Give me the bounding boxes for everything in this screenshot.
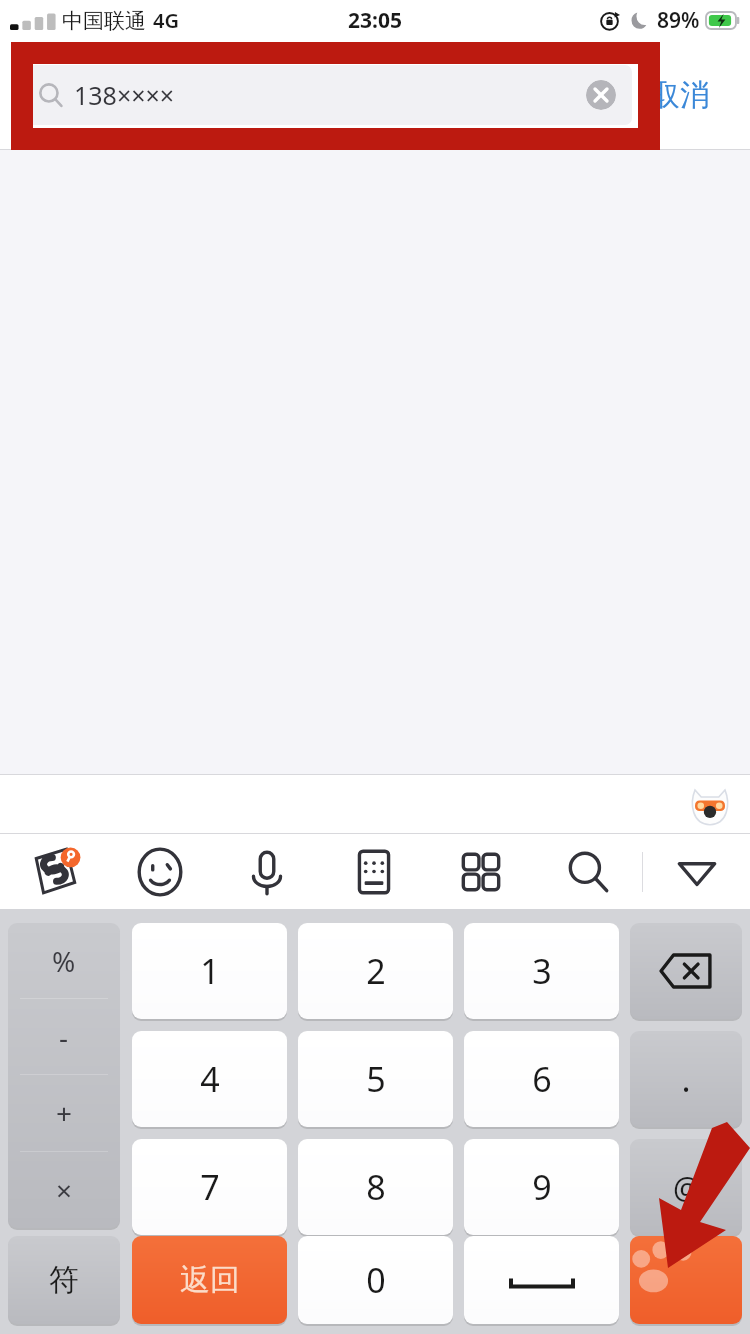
button[interactable]: Hide keyboard — [671, 846, 723, 898]
button[interactable]: Confirm — [630, 1236, 742, 1324]
staticText: 中国联通 — [62, 8, 146, 34]
button[interactable]: Search — [562, 846, 614, 898]
button[interactable]: 0 — [298, 1236, 453, 1324]
staticText: 3 — [532, 948, 552, 994]
button[interactable]: Space — [464, 1236, 619, 1324]
button[interactable]: 取消 — [632, 40, 728, 150]
staticText: . — [681, 1056, 691, 1102]
button[interactable]: Voice input — [241, 846, 293, 898]
staticText: 符 — [49, 1261, 79, 1299]
staticText: 9 — [532, 1164, 552, 1210]
button[interactable]: 6 — [464, 1031, 619, 1127]
button[interactable] — [630, 923, 742, 1019]
staticText: × — [56, 1171, 73, 1209]
button[interactable]: + — [8, 1075, 120, 1151]
button[interactable]: Emoji — [134, 846, 186, 898]
button[interactable]: Clear text — [586, 80, 616, 110]
button[interactable]: 5 — [298, 1031, 453, 1127]
button[interactable]: 8 — [298, 1139, 453, 1235]
staticText: @ — [673, 1167, 700, 1208]
staticText: + — [56, 1094, 73, 1132]
button[interactable]: 138×××× — [22, 65, 632, 125]
button[interactable]: 1 — [132, 923, 287, 1019]
button[interactable]: 9 — [464, 1139, 619, 1235]
button[interactable]: @ — [630, 1139, 742, 1235]
staticText: % — [52, 942, 76, 980]
staticText: 6 — [532, 1056, 552, 1102]
staticText: 23:05 — [348, 6, 402, 35]
staticText: - — [59, 1018, 69, 1056]
staticText: 2 — [366, 948, 386, 994]
staticText: 4G — [153, 7, 179, 34]
button[interactable]: 4 — [132, 1031, 287, 1127]
button[interactable]: 返回 — [132, 1236, 287, 1324]
staticText: 1 — [200, 948, 220, 994]
staticText: 7 — [200, 1164, 220, 1210]
staticText: 138×××× — [74, 78, 175, 112]
button[interactable]: 符 — [8, 1236, 120, 1324]
button[interactable]: × — [8, 1152, 120, 1228]
staticText: 取消 — [650, 76, 710, 114]
staticText: 4 — [200, 1056, 220, 1102]
button[interactable]: Sogou input settings — [30, 846, 82, 898]
button[interactable]: Keyboard layout — [348, 846, 400, 898]
button[interactable]: 7 — [132, 1139, 287, 1235]
button[interactable]: Input method mascot — [688, 782, 732, 826]
staticText: 5 — [366, 1056, 386, 1102]
button[interactable]: More tools — [455, 846, 507, 898]
staticText: 0 — [366, 1257, 386, 1303]
button[interactable]: . — [630, 1031, 742, 1127]
button[interactable]: 2 — [298, 923, 453, 1019]
staticText: 89% — [657, 6, 700, 35]
button[interactable]: 3 — [464, 923, 619, 1019]
staticText: 返回 — [180, 1261, 240, 1299]
staticText: 8 — [366, 1164, 386, 1210]
button[interactable]: % — [8, 923, 120, 998]
button[interactable]: - — [8, 999, 120, 1074]
